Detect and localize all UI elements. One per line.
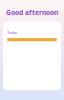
staticText: Good afternoon xyxy=(6,8,58,17)
staticText: Today xyxy=(7,30,17,35)
